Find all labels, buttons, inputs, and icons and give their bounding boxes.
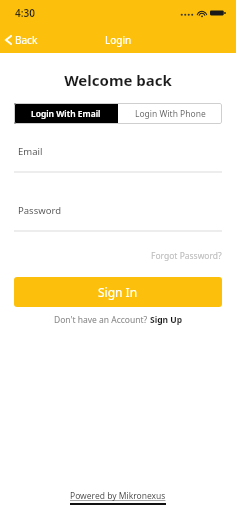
staticText: 4:30 [15, 6, 35, 20]
staticText: Back [15, 33, 38, 47]
staticText: Login With Email [31, 108, 101, 120]
button[interactable]: Password [14, 204, 222, 232]
button[interactable]: Back [0, 29, 46, 51]
button[interactable]: Login With Email [14, 103, 118, 124]
staticText: Sign In [98, 284, 138, 300]
staticText: Login With Phone [135, 108, 206, 120]
staticText: Welcome back [0, 70, 236, 90]
button[interactable]: Login With Phone [118, 103, 222, 124]
button[interactable]: Email [14, 145, 222, 173]
button[interactable]: Forgot Password? [137, 247, 236, 265]
button[interactable]: Sign In [14, 277, 222, 307]
staticText: Don't have an Account? [54, 314, 150, 326]
other: Back [4, 34, 13, 46]
staticText: Password [18, 204, 61, 217]
button[interactable]: Powered by Mikronexus [70, 490, 166, 502]
staticText: Email [18, 145, 43, 158]
button[interactable]: Sign Up [150, 314, 183, 326]
staticText: Login [105, 33, 132, 47]
